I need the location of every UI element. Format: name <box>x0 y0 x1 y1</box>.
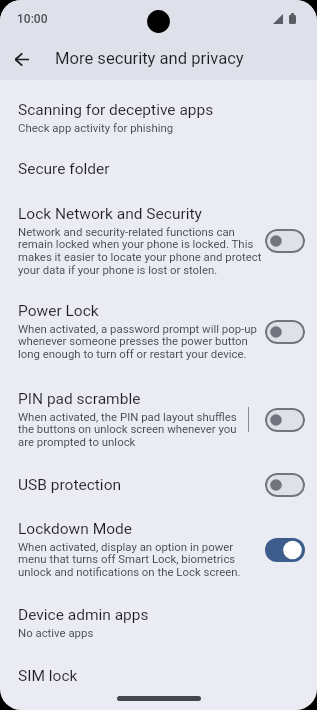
staticText: Secure folder <box>18 160 110 178</box>
staticText: Network and security-related functions c… <box>18 225 262 277</box>
staticText: Lock Network and Security <box>18 205 202 223</box>
button[interactable]: Turn off <box>265 538 305 562</box>
button[interactable]: Back <box>5 42 39 76</box>
button[interactable]: Power Lock <box>0 290 317 378</box>
staticText: Check app activity for phishing <box>18 121 174 134</box>
button[interactable]: PIN pad scramble <box>0 378 317 459</box>
staticText: No active apps <box>18 626 94 639</box>
staticText: Device admin apps <box>18 606 149 624</box>
button[interactable]: Turn on <box>265 229 305 253</box>
staticText: PIN pad scramble <box>18 390 141 408</box>
button[interactable]: Scanning for deceptive apps <box>0 80 317 147</box>
button[interactable]: Turn on <box>265 408 305 432</box>
staticText: SIM lock <box>18 667 78 685</box>
button[interactable]: Lockdown Mode <box>0 508 317 593</box>
staticText: USB protection <box>18 476 122 494</box>
button[interactable]: Lock Network and Security <box>0 194 317 290</box>
staticText: More security and privacy <box>55 49 244 68</box>
staticText: When activated, a password prompt will p… <box>18 322 262 361</box>
staticText: Lockdown Mode <box>18 520 132 538</box>
button[interactable]: USB protection <box>0 459 317 508</box>
staticText: When activated, the PIN pad layout shuff… <box>18 410 246 449</box>
button[interactable]: SIM lock <box>0 653 317 699</box>
button[interactable]: Secure folder <box>0 147 317 194</box>
button[interactable]: Turn on <box>265 473 305 497</box>
button[interactable]: Turn on <box>265 320 305 344</box>
staticText: Power Lock <box>18 302 99 320</box>
staticText: When activated, display an option in pow… <box>18 540 262 579</box>
staticText: 10:00 <box>17 12 48 26</box>
staticText: Scanning for deceptive apps <box>18 101 214 119</box>
button[interactable]: Device admin apps <box>0 593 317 653</box>
